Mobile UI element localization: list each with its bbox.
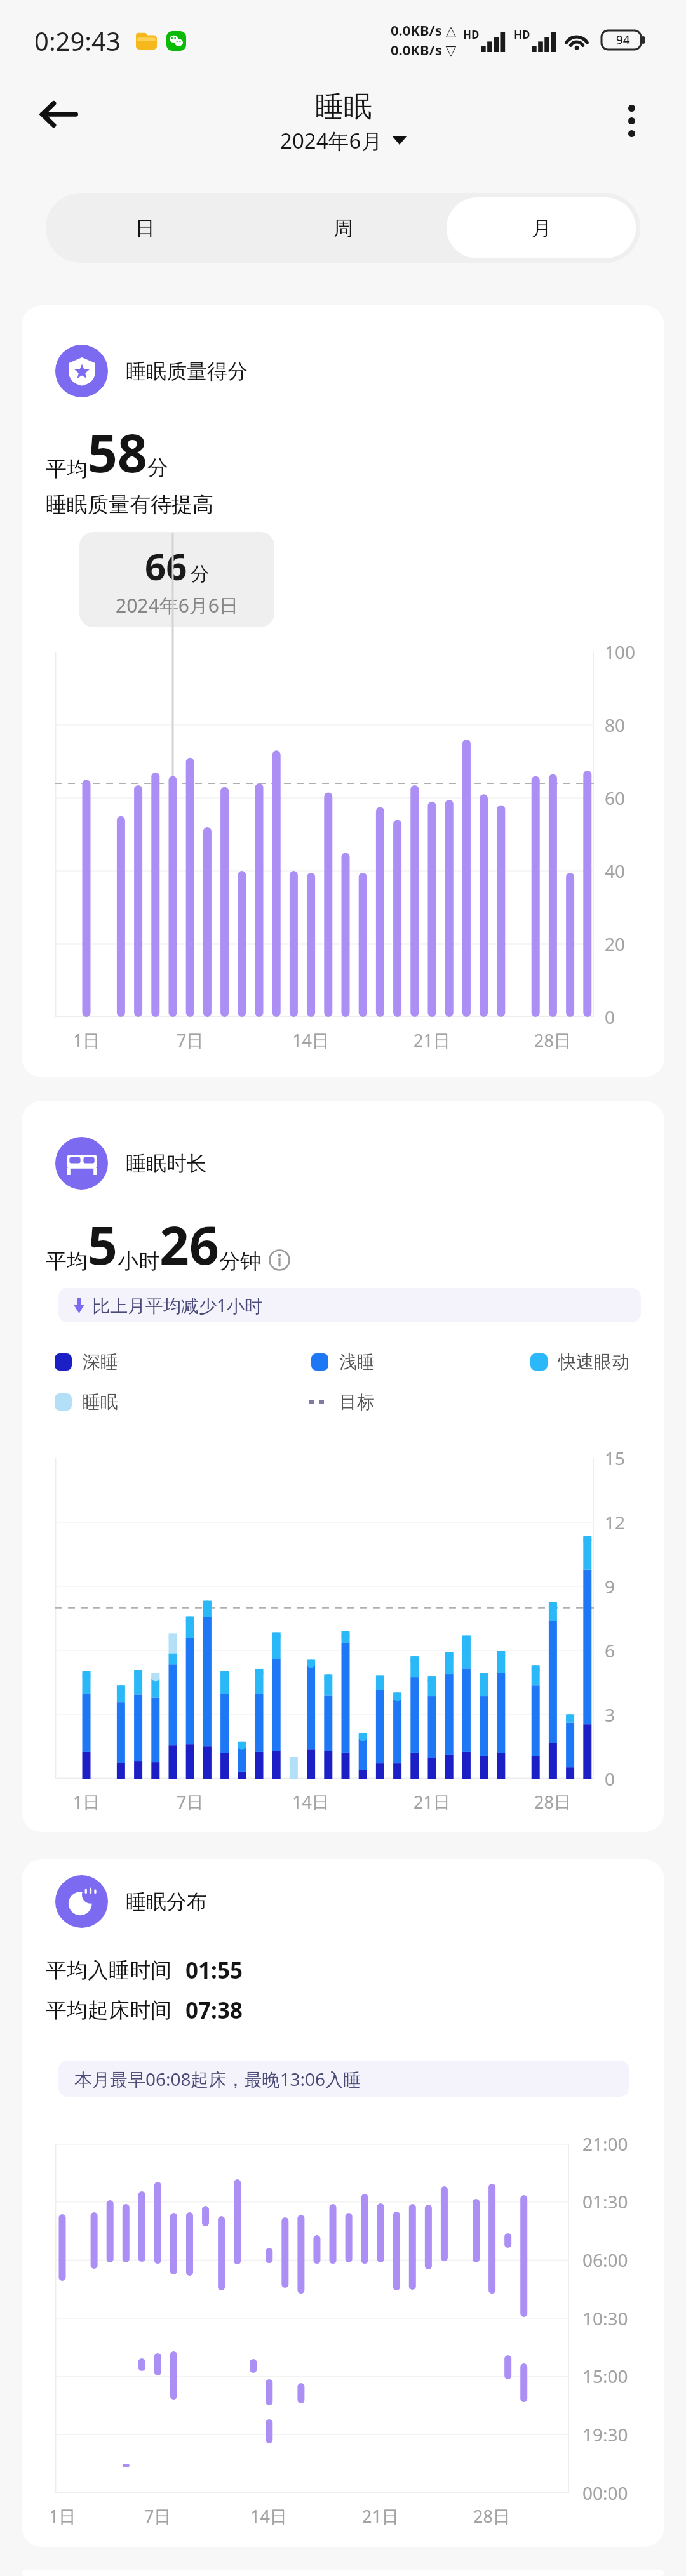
staticText: 100 bbox=[605, 640, 636, 664]
staticText: 40 bbox=[605, 859, 626, 883]
staticText: 0.0KB/s ▽ bbox=[391, 40, 457, 59]
staticText: 1日 bbox=[73, 1028, 100, 1052]
button[interactable]: 周 bbox=[248, 197, 438, 258]
button[interactable]: Back bbox=[20, 76, 98, 153]
staticText: 日 bbox=[135, 216, 155, 241]
staticText: 平均起床时间 bbox=[46, 1997, 171, 2024]
staticText: 26 bbox=[159, 1209, 219, 1280]
staticText: 10:30 bbox=[582, 2306, 628, 2330]
staticText: 94 bbox=[616, 32, 630, 48]
staticText: 0 bbox=[605, 1005, 615, 1029]
staticText: 7日 bbox=[144, 2504, 171, 2528]
staticText: 平均 bbox=[46, 456, 88, 482]
staticText: 睡眠质量有待提高 bbox=[46, 491, 213, 518]
staticText: 15 bbox=[605, 1446, 626, 1470]
staticText: 01:55 bbox=[185, 1955, 243, 1986]
staticText: 20 bbox=[605, 932, 626, 956]
staticText: 07:38 bbox=[185, 1995, 243, 2026]
staticText: 睡眠 bbox=[83, 1391, 118, 1413]
staticText: HD bbox=[514, 27, 530, 42]
staticText: 平均 bbox=[46, 1248, 88, 1275]
staticText: 3 bbox=[605, 1703, 615, 1727]
staticText: 28日 bbox=[473, 2504, 510, 2528]
staticText: 2024年6月6日 bbox=[116, 592, 238, 618]
staticText: 7日 bbox=[177, 1790, 204, 1814]
staticText: 浅睡 bbox=[339, 1351, 375, 1373]
staticText: HD bbox=[463, 27, 480, 42]
staticText: 5 bbox=[88, 1209, 118, 1280]
staticText: 本月最早06:08起床，最晚13:06入睡 bbox=[74, 2067, 361, 2091]
staticText: 平均入睡时间 bbox=[46, 1957, 171, 1984]
staticText: 1日 bbox=[73, 1790, 100, 1814]
staticText: 12 bbox=[605, 1510, 626, 1534]
staticText: 01:30 bbox=[582, 2189, 628, 2214]
staticText: 14日 bbox=[292, 1790, 329, 1814]
staticText: 58 bbox=[88, 416, 147, 488]
staticText: 分 bbox=[147, 455, 168, 481]
staticText: 目标 bbox=[339, 1391, 375, 1413]
staticText: 60 bbox=[605, 786, 626, 810]
staticText: 月 bbox=[532, 216, 551, 241]
staticText: 睡眠 bbox=[315, 89, 372, 125]
staticText: 分 bbox=[191, 562, 210, 586]
staticText: 00:00 bbox=[582, 2481, 628, 2505]
staticText: 80 bbox=[605, 713, 626, 737]
staticText: 19:30 bbox=[582, 2422, 628, 2447]
button[interactable]: 2024年6月 bbox=[280, 126, 407, 155]
staticText: 28日 bbox=[534, 1790, 571, 1814]
staticText: 睡眠质量得分 bbox=[126, 359, 248, 384]
staticText: 2024年6月 bbox=[280, 126, 382, 155]
staticText: 0:29:43 bbox=[34, 23, 121, 58]
staticText: 21日 bbox=[414, 1028, 450, 1052]
button[interactable]: More options bbox=[597, 86, 666, 155]
staticText: 6 bbox=[605, 1638, 615, 1663]
staticText: 快速眼动 bbox=[558, 1351, 629, 1373]
staticText: 0.0KB/s △ bbox=[391, 20, 457, 39]
staticText: 9 bbox=[605, 1574, 615, 1598]
staticText: 14日 bbox=[250, 2504, 287, 2528]
staticText: 14日 bbox=[292, 1028, 329, 1052]
staticText: 睡眠分布 bbox=[126, 1889, 207, 1915]
staticText: 周 bbox=[333, 216, 353, 241]
staticText: 分钟 bbox=[219, 1248, 261, 1275]
staticText: 15:00 bbox=[582, 2364, 628, 2388]
staticText: 06:00 bbox=[582, 2248, 628, 2272]
staticText: 比上月平均减少1小时 bbox=[92, 1293, 263, 1317]
staticText: 1日 bbox=[49, 2504, 76, 2528]
button[interactable]: 日 bbox=[50, 197, 239, 258]
staticText: 21日 bbox=[414, 1790, 450, 1814]
staticText: 66 bbox=[145, 541, 187, 591]
staticText: 28日 bbox=[534, 1028, 571, 1052]
staticText: 小时 bbox=[118, 1248, 159, 1275]
staticText: 21:00 bbox=[582, 2132, 628, 2156]
staticText: 0 bbox=[605, 1767, 615, 1791]
button[interactable]: 月 bbox=[447, 197, 636, 258]
staticText: 21日 bbox=[362, 2504, 399, 2528]
staticText: 睡眠时长 bbox=[126, 1151, 207, 1176]
staticText: 7日 bbox=[177, 1028, 204, 1052]
staticText: 深睡 bbox=[83, 1351, 118, 1373]
